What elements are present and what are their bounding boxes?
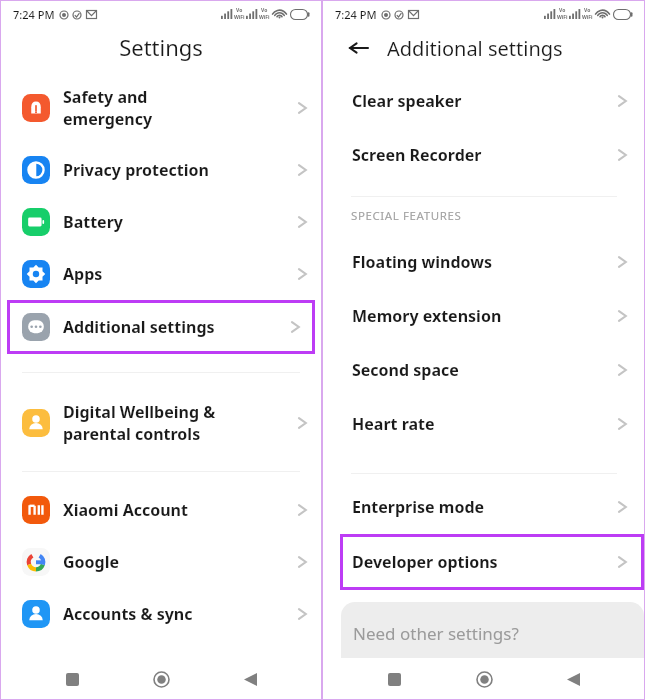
staticText: Enterprise mode	[352, 496, 485, 518]
button[interactable]: Clear speaker	[322, 74, 645, 128]
staticText: Accounts & sync	[63, 603, 193, 625]
button[interactable]: Memory extension	[322, 289, 645, 343]
staticText: Xiaomi Account	[63, 499, 188, 521]
staticText: Digital Wellbeing & parental controls	[63, 401, 216, 445]
button[interactable]: Recents	[55, 662, 89, 696]
staticText: Heart rate	[352, 413, 435, 435]
staticText: Floating windows	[352, 251, 492, 273]
button[interactable]: Google	[0, 536, 322, 588]
staticText: Vo	[559, 7, 566, 14]
button[interactable]: Accounts & sync	[0, 588, 322, 640]
button[interactable]: Safety and emergency	[0, 72, 322, 144]
staticText: Privacy protection	[63, 159, 209, 181]
staticText: Vo	[584, 7, 591, 14]
staticText: WiFi	[582, 14, 593, 21]
staticText: Apps	[63, 263, 103, 285]
staticText: Vo	[236, 7, 243, 14]
button[interactable]: Home	[467, 662, 501, 696]
button[interactable]: Back	[233, 662, 267, 696]
staticText: Memory extension	[352, 305, 502, 327]
staticText: SPECIAL FEATURES	[351, 208, 462, 224]
button[interactable]: Floating windows	[322, 235, 645, 289]
staticText: Vo	[261, 7, 268, 14]
button[interactable]: Back	[556, 662, 590, 696]
button[interactable]: Privacy protection	[0, 144, 322, 196]
staticText: WiFi	[234, 14, 245, 21]
button[interactable]: Digital Wellbeing & parental controls	[0, 387, 322, 459]
button[interactable]: Second space	[322, 343, 645, 397]
staticText: WiFi	[259, 14, 270, 21]
staticText: Developer options	[352, 551, 498, 573]
button[interactable]: Need other settings?	[341, 602, 644, 658]
staticText: 7:24 PM	[13, 7, 55, 22]
staticText: Screen Recorder	[352, 144, 482, 166]
staticText: WiFi	[557, 14, 568, 21]
button[interactable]: Apps	[0, 248, 322, 300]
staticText: Safety and emergency	[63, 86, 153, 130]
button[interactable]: Back	[344, 33, 374, 63]
button[interactable]: Battery	[0, 196, 322, 248]
button[interactable]: Xiaomi Account	[0, 484, 322, 536]
staticText: Second space	[352, 359, 459, 381]
button[interactable]: Recents	[377, 662, 411, 696]
button[interactable]: Enterprise mode	[322, 480, 645, 534]
staticText: Battery	[63, 211, 123, 233]
button[interactable]: Screen Recorder	[322, 128, 645, 182]
staticText: 7:24 PM	[335, 7, 377, 22]
staticText: Clear speaker	[352, 90, 462, 112]
button[interactable]: Developer options	[340, 534, 644, 590]
button[interactable]: Home	[144, 662, 178, 696]
button[interactable]: Additional settings	[7, 300, 315, 354]
staticText: Need other settings?	[353, 622, 519, 645]
button[interactable]: Heart rate	[322, 397, 645, 451]
staticText: Additional settings	[63, 316, 215, 338]
staticText: Additional settings	[387, 35, 563, 62]
staticText: Settings	[119, 32, 203, 62]
staticText: Google	[63, 551, 120, 573]
